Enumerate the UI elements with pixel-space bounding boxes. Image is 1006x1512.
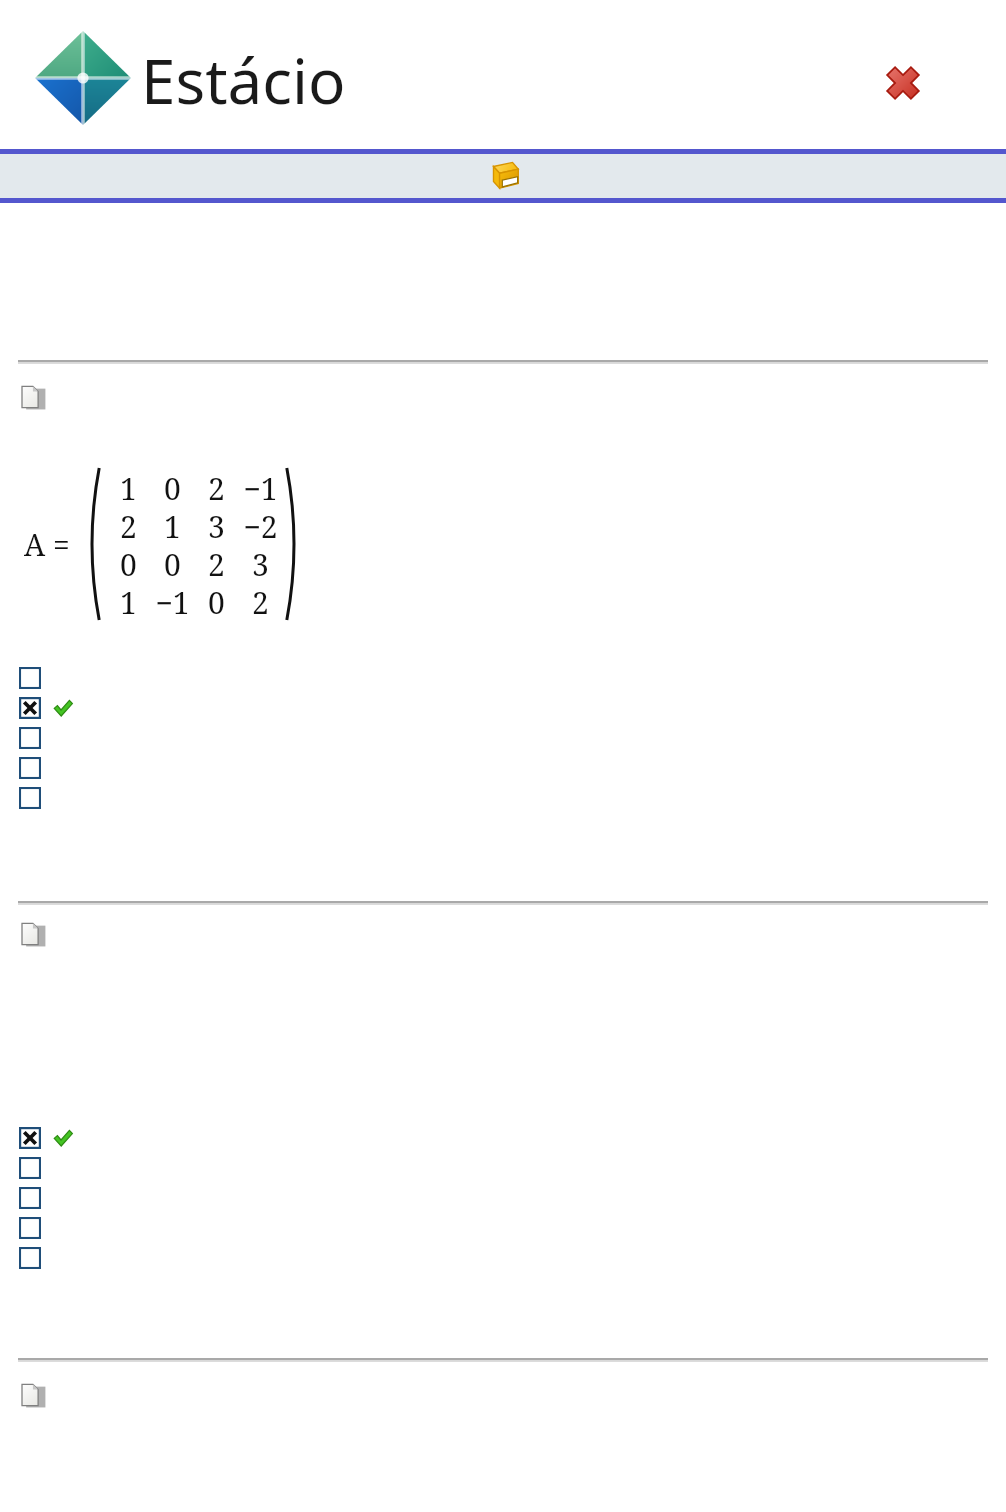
button[interactable] bbox=[19, 693, 419, 723]
staticText: 1 bbox=[120, 468, 137, 506]
staticText: 1 bbox=[164, 506, 181, 544]
button[interactable] bbox=[19, 783, 419, 813]
button[interactable]: Livro bbox=[481, 154, 525, 198]
button[interactable] bbox=[19, 1183, 419, 1213]
staticText: 2 bbox=[252, 582, 269, 620]
staticText: A = bbox=[24, 524, 70, 565]
button[interactable] bbox=[19, 1243, 419, 1273]
button[interactable] bbox=[19, 1123, 419, 1153]
staticText: 0 bbox=[120, 544, 137, 582]
staticText: 0 bbox=[208, 582, 225, 620]
staticText: 3 bbox=[208, 506, 225, 544]
staticText: 2 bbox=[120, 506, 137, 544]
staticText: 3 bbox=[252, 544, 269, 582]
button[interactable]: Estácio bbox=[28, 28, 368, 128]
button[interactable]: Fechar bbox=[874, 54, 932, 112]
staticText: 0 bbox=[164, 544, 181, 582]
staticText: −1 bbox=[155, 582, 190, 620]
staticText: 2 bbox=[208, 544, 225, 582]
button[interactable] bbox=[19, 663, 419, 693]
staticText: Estácio bbox=[141, 38, 346, 122]
staticText: 2 bbox=[208, 468, 225, 506]
staticText: −2 bbox=[243, 506, 278, 544]
button[interactable] bbox=[19, 1153, 419, 1183]
staticText: −1 bbox=[243, 468, 278, 506]
button[interactable] bbox=[19, 753, 419, 783]
staticText: 1 bbox=[120, 582, 137, 620]
button[interactable] bbox=[19, 1213, 419, 1243]
button[interactable] bbox=[19, 723, 419, 753]
staticText: 0 bbox=[164, 468, 181, 506]
